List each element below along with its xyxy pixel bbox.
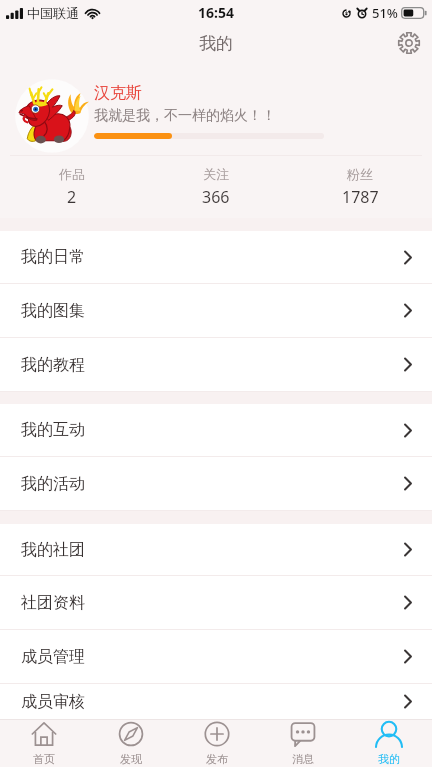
staticText: 2 <box>67 186 77 208</box>
button[interactable]: 我的活动 <box>0 457 432 510</box>
staticText: 发现 <box>120 752 142 766</box>
staticText: 发布 <box>206 752 228 766</box>
staticText: 1787 <box>342 186 379 208</box>
staticText: 中国联通 <box>27 5 79 21</box>
button[interactable]: 我的社团 <box>0 524 432 575</box>
staticText: 我的 <box>199 33 233 54</box>
button[interactable]: 我的日常 <box>0 231 432 283</box>
staticText: 51% <box>372 4 398 22</box>
button[interactable]: 我的教程 <box>0 338 432 391</box>
button[interactable]: 发布 <box>174 720 260 767</box>
button[interactable]: 成员管理 <box>0 630 432 683</box>
staticText: 首页 <box>33 752 55 766</box>
staticText: 我的 <box>378 752 400 766</box>
button[interactable]: 我的图集 <box>0 284 432 337</box>
button[interactable]: 成员审核 <box>0 684 432 719</box>
button[interactable]: 消息 <box>260 720 346 767</box>
staticText: 我就是我，不一样的焰火！！ <box>94 107 276 125</box>
button[interactable]: Settings <box>392 26 426 60</box>
button[interactable]: 社团资料 <box>0 576 432 629</box>
staticText: 366 <box>202 186 230 208</box>
button[interactable]: 我的互动 <box>0 404 432 456</box>
staticText: 16:54 <box>198 3 234 22</box>
staticText: 我的活动 <box>21 474 85 494</box>
staticText: 我的图集 <box>21 301 85 321</box>
button[interactable]: 首页 <box>0 720 87 767</box>
staticText: 我的互动 <box>21 420 85 440</box>
button[interactable]: 关注 <box>144 156 288 218</box>
staticText: 消息 <box>292 752 314 766</box>
staticText: 粉丝 <box>347 166 373 182</box>
staticText: 作品 <box>59 166 85 182</box>
staticText: 关注 <box>203 166 229 182</box>
button[interactable]: 发现 <box>87 720 174 767</box>
staticText: 我的日常 <box>21 247 85 267</box>
staticText: 我的教程 <box>21 355 85 375</box>
staticText: 成员管理 <box>21 647 85 667</box>
button[interactable]: 作品 <box>0 156 144 218</box>
button[interactable]: 粉丝 <box>288 156 432 218</box>
staticText: 我的社团 <box>21 540 85 560</box>
button[interactable]: 我的 <box>346 720 432 767</box>
staticText: 社团资料 <box>21 593 85 613</box>
staticText: 汉克斯 <box>94 83 142 103</box>
staticText: 成员审核 <box>21 692 85 712</box>
